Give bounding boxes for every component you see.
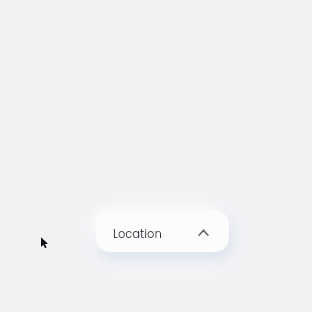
other: Collapse bbox=[198, 229, 209, 237]
button[interactable]: Location bbox=[96, 211, 229, 252]
staticText: Location bbox=[113, 226, 162, 242]
